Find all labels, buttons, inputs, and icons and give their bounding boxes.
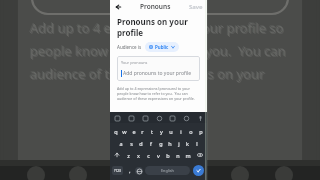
button[interactable]: g: [156, 137, 165, 149]
staticText: people know how to refer to you. You can…: [31, 43, 295, 61]
button[interactable]: Backspace: [193, 149, 206, 161]
staticText: u: [169, 128, 173, 135]
button[interactable]: u: [166, 125, 176, 137]
staticText: e: [132, 128, 136, 135]
button[interactable]: Back: [112, 1, 123, 12]
button[interactable]: j: [174, 137, 183, 149]
staticText: d: [139, 140, 143, 147]
staticText: b: [166, 152, 170, 159]
button[interactable]: k: [183, 137, 192, 149]
staticText: Your pronouns: [121, 60, 148, 65]
button[interactable]: English: [145, 166, 190, 175]
button[interactable]: y: [156, 125, 166, 137]
button[interactable]: e: [129, 125, 138, 137]
staticText: m: [185, 152, 191, 159]
button[interactable]: x: [133, 149, 143, 161]
button[interactable]: q: [111, 125, 120, 137]
button[interactable]: Toolbar action 4: [155, 114, 163, 122]
button[interactable]: Toolbar action 3: [141, 114, 149, 122]
staticText: ?123: [114, 169, 121, 173]
button[interactable]: Toolbar action 2: [127, 114, 135, 122]
staticText: ,: [129, 167, 131, 174]
button[interactable]: d: [136, 137, 146, 149]
staticText: x: [137, 152, 140, 159]
staticText: Add pronouns to your profile: [123, 70, 192, 77]
staticText: audience of these expressions on your pr…: [31, 66, 295, 84]
staticText: Add up to 4 expressions to your profile …: [31, 20, 285, 38]
staticText: k: [186, 140, 189, 147]
button[interactable]: n: [173, 149, 183, 161]
staticText: z: [127, 152, 130, 159]
button[interactable]: ?123: [112, 166, 123, 175]
staticText: f: [150, 140, 152, 147]
staticText: o: [189, 128, 193, 135]
staticText: Public: [155, 44, 169, 50]
staticText: Save: [189, 3, 203, 11]
button[interactable]: Toolbar action 1: [113, 114, 121, 122]
button[interactable]: c: [143, 149, 153, 161]
staticText: Pronouns on your profile: [117, 16, 207, 38]
button[interactable]: Save: [187, 3, 205, 11]
button[interactable]: w: [120, 125, 129, 137]
button[interactable]: f: [146, 137, 156, 149]
staticText: y: [160, 128, 163, 135]
button[interactable]: v: [153, 149, 163, 161]
button[interactable]: i: [176, 125, 186, 137]
staticText: i: [180, 128, 182, 135]
staticText: q: [114, 128, 118, 135]
staticText: n: [176, 152, 180, 159]
button[interactable]: Public: [145, 42, 179, 52]
staticText: Audience is: [117, 44, 142, 50]
staticText: l: [196, 140, 198, 147]
button[interactable]: Comma: [126, 167, 133, 174]
staticText: c: [147, 152, 150, 159]
button[interactable]: Toolbar action 5: [168, 114, 176, 122]
staticText: t: [151, 128, 153, 135]
staticText: a: [119, 140, 123, 147]
button[interactable]: s: [126, 137, 136, 149]
staticText: people know how to refer to you. You can…: [30, 42, 294, 60]
staticText: j: [178, 140, 180, 147]
button[interactable]: h: [165, 137, 174, 149]
button[interactable]: Emoji: [135, 167, 143, 175]
staticText: p: [199, 128, 203, 135]
staticText: h: [168, 140, 172, 147]
button[interactable]: Enter: [193, 165, 204, 176]
button[interactable]: p: [196, 125, 206, 137]
staticText: audience of these expressions on your pr…: [117, 96, 195, 101]
button[interactable]: Your pronouns: [117, 56, 200, 81]
staticText: Add up to 4 expressions to your profile …: [29, 18, 283, 36]
staticText: audience of these expressions on your pr…: [29, 64, 293, 82]
button[interactable]: t: [147, 125, 156, 137]
staticText: r: [141, 128, 144, 135]
staticText: audience of these expressions on your pr…: [30, 65, 294, 83]
button[interactable]: a: [116, 137, 126, 149]
staticText: people know how to refer to you. You can…: [117, 91, 200, 96]
button[interactable]: r: [138, 125, 147, 137]
staticText: people know how to refer to you. You can…: [29, 41, 293, 59]
button[interactable]: m: [183, 149, 193, 161]
button[interactable]: Toolbar action 7: [196, 114, 204, 122]
button[interactable]: z: [123, 149, 133, 161]
button[interactable]: Shift: [111, 149, 123, 161]
button[interactable]: l: [192, 137, 201, 149]
staticText: w: [122, 128, 127, 135]
staticText: Pronouns: [140, 2, 171, 11]
button[interactable]: Toolbar action 6: [182, 114, 190, 122]
button[interactable]: o: [186, 125, 196, 137]
button[interactable]: b: [163, 149, 173, 161]
staticText: s: [130, 140, 133, 147]
staticText: v: [157, 152, 160, 159]
staticText: English: [161, 168, 174, 173]
staticText: Add up to 4 expressions to your profile …: [30, 19, 284, 37]
staticText: g: [159, 140, 163, 147]
staticText: Add up to 4 expressions (pronouns) to yo…: [117, 86, 200, 91]
